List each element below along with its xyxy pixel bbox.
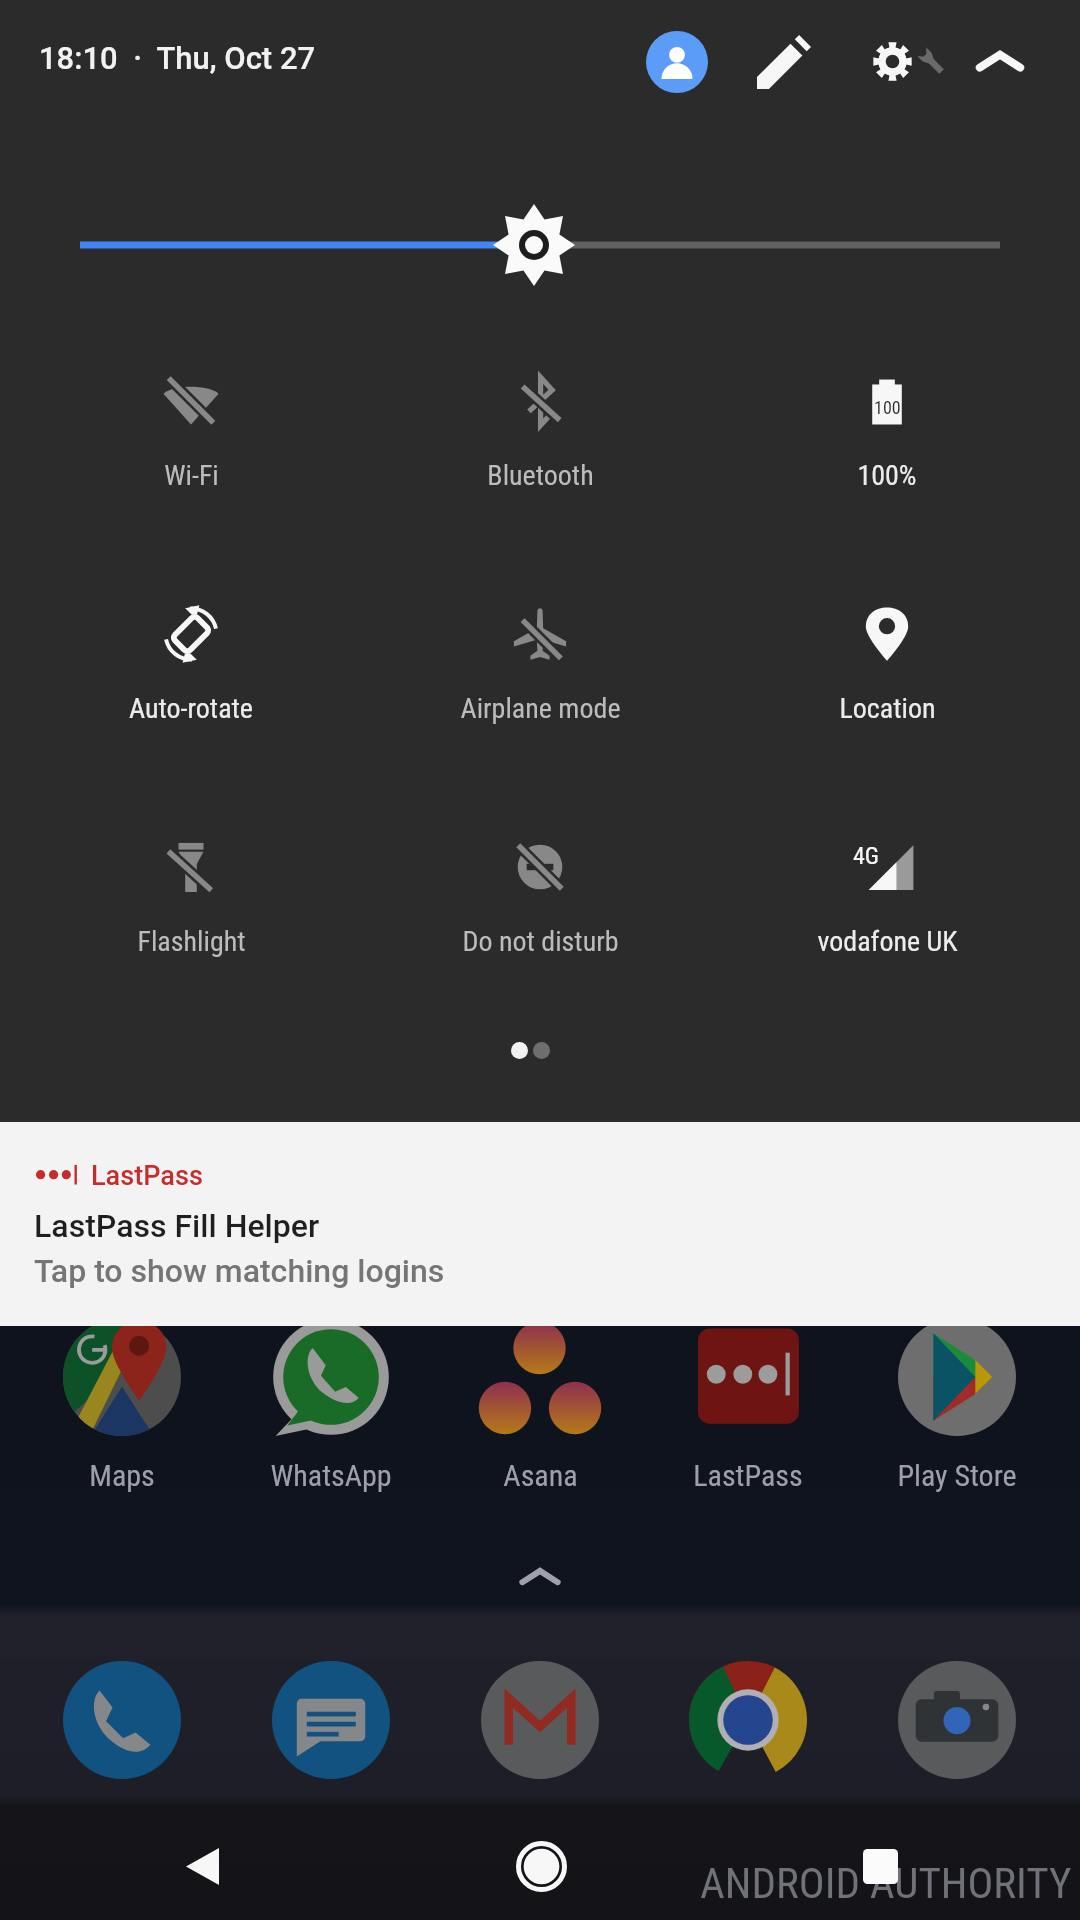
button[interactable]: LastPass <box>653 1318 843 1518</box>
button[interactable]: Auto-rotate <box>41 585 341 745</box>
staticText: 18:10 · Thu, Oct 27 <box>39 40 316 76</box>
staticText: Tap to show matching logins <box>34 1252 445 1290</box>
button[interactable]: 4G <box>737 818 1037 978</box>
button[interactable]: Gmail <box>452 1632 628 1808</box>
button[interactable]: Home <box>481 1806 601 1920</box>
staticText: 4G <box>853 842 880 870</box>
staticText: Do not disturb <box>462 925 619 958</box>
button[interactable]: Camera <box>869 1632 1045 1808</box>
button[interactable]: Collapse panel <box>960 22 1040 102</box>
staticText: LastPass <box>91 1160 203 1192</box>
button[interactable]: Recent apps <box>820 1806 940 1920</box>
staticText: vodafone UK <box>817 925 958 958</box>
button[interactable]: Asana <box>445 1318 635 1518</box>
staticText: ANDROID AUTHORITY <box>700 1858 1072 1908</box>
staticText: WhatsApp <box>270 1458 392 1493</box>
button[interactable]: Airplane mode <box>390 585 690 745</box>
button[interactable]: Back <box>142 1806 262 1920</box>
staticText: 100% <box>857 459 917 492</box>
staticText: Airplane mode <box>460 692 621 725</box>
button[interactable]: Settings <box>848 14 948 114</box>
button[interactable]: LastPass <box>0 1122 1080 1326</box>
button[interactable]: 100 <box>737 352 1037 512</box>
button[interactable]: Edit tiles <box>744 22 824 102</box>
button[interactable]: Location <box>737 585 1037 745</box>
button[interactable]: User profile <box>637 22 717 102</box>
button[interactable]: Maps <box>27 1318 217 1518</box>
staticText: Maps <box>89 1458 155 1493</box>
staticText: Wi-Fi <box>164 459 219 492</box>
button[interactable]: Bluetooth <box>390 352 690 512</box>
staticText: Asana <box>503 1458 578 1493</box>
button[interactable]: Flashlight <box>41 818 341 978</box>
staticText: Flashlight <box>137 925 246 958</box>
staticText: Location <box>839 692 936 725</box>
staticText: Play Store <box>897 1458 1017 1493</box>
button[interactable]: Do not disturb <box>390 818 690 978</box>
button[interactable]: Chrome <box>660 1632 836 1808</box>
staticText: Bluetooth <box>487 459 594 492</box>
button[interactable]: Messages <box>243 1632 419 1808</box>
button[interactable]: Play Store <box>862 1318 1052 1518</box>
staticText: Auto-rotate <box>129 692 253 725</box>
staticText: LastPass Fill Helper <box>34 1207 320 1245</box>
staticText: 100 <box>874 397 901 418</box>
button[interactable]: WhatsApp <box>236 1318 426 1518</box>
button[interactable]: Phone <box>34 1632 210 1808</box>
button[interactable]: Open app drawer <box>500 1538 580 1618</box>
button[interactable]: Wi-Fi <box>41 352 341 512</box>
button[interactable] <box>0 200 1080 290</box>
staticText: LastPass <box>693 1458 803 1493</box>
